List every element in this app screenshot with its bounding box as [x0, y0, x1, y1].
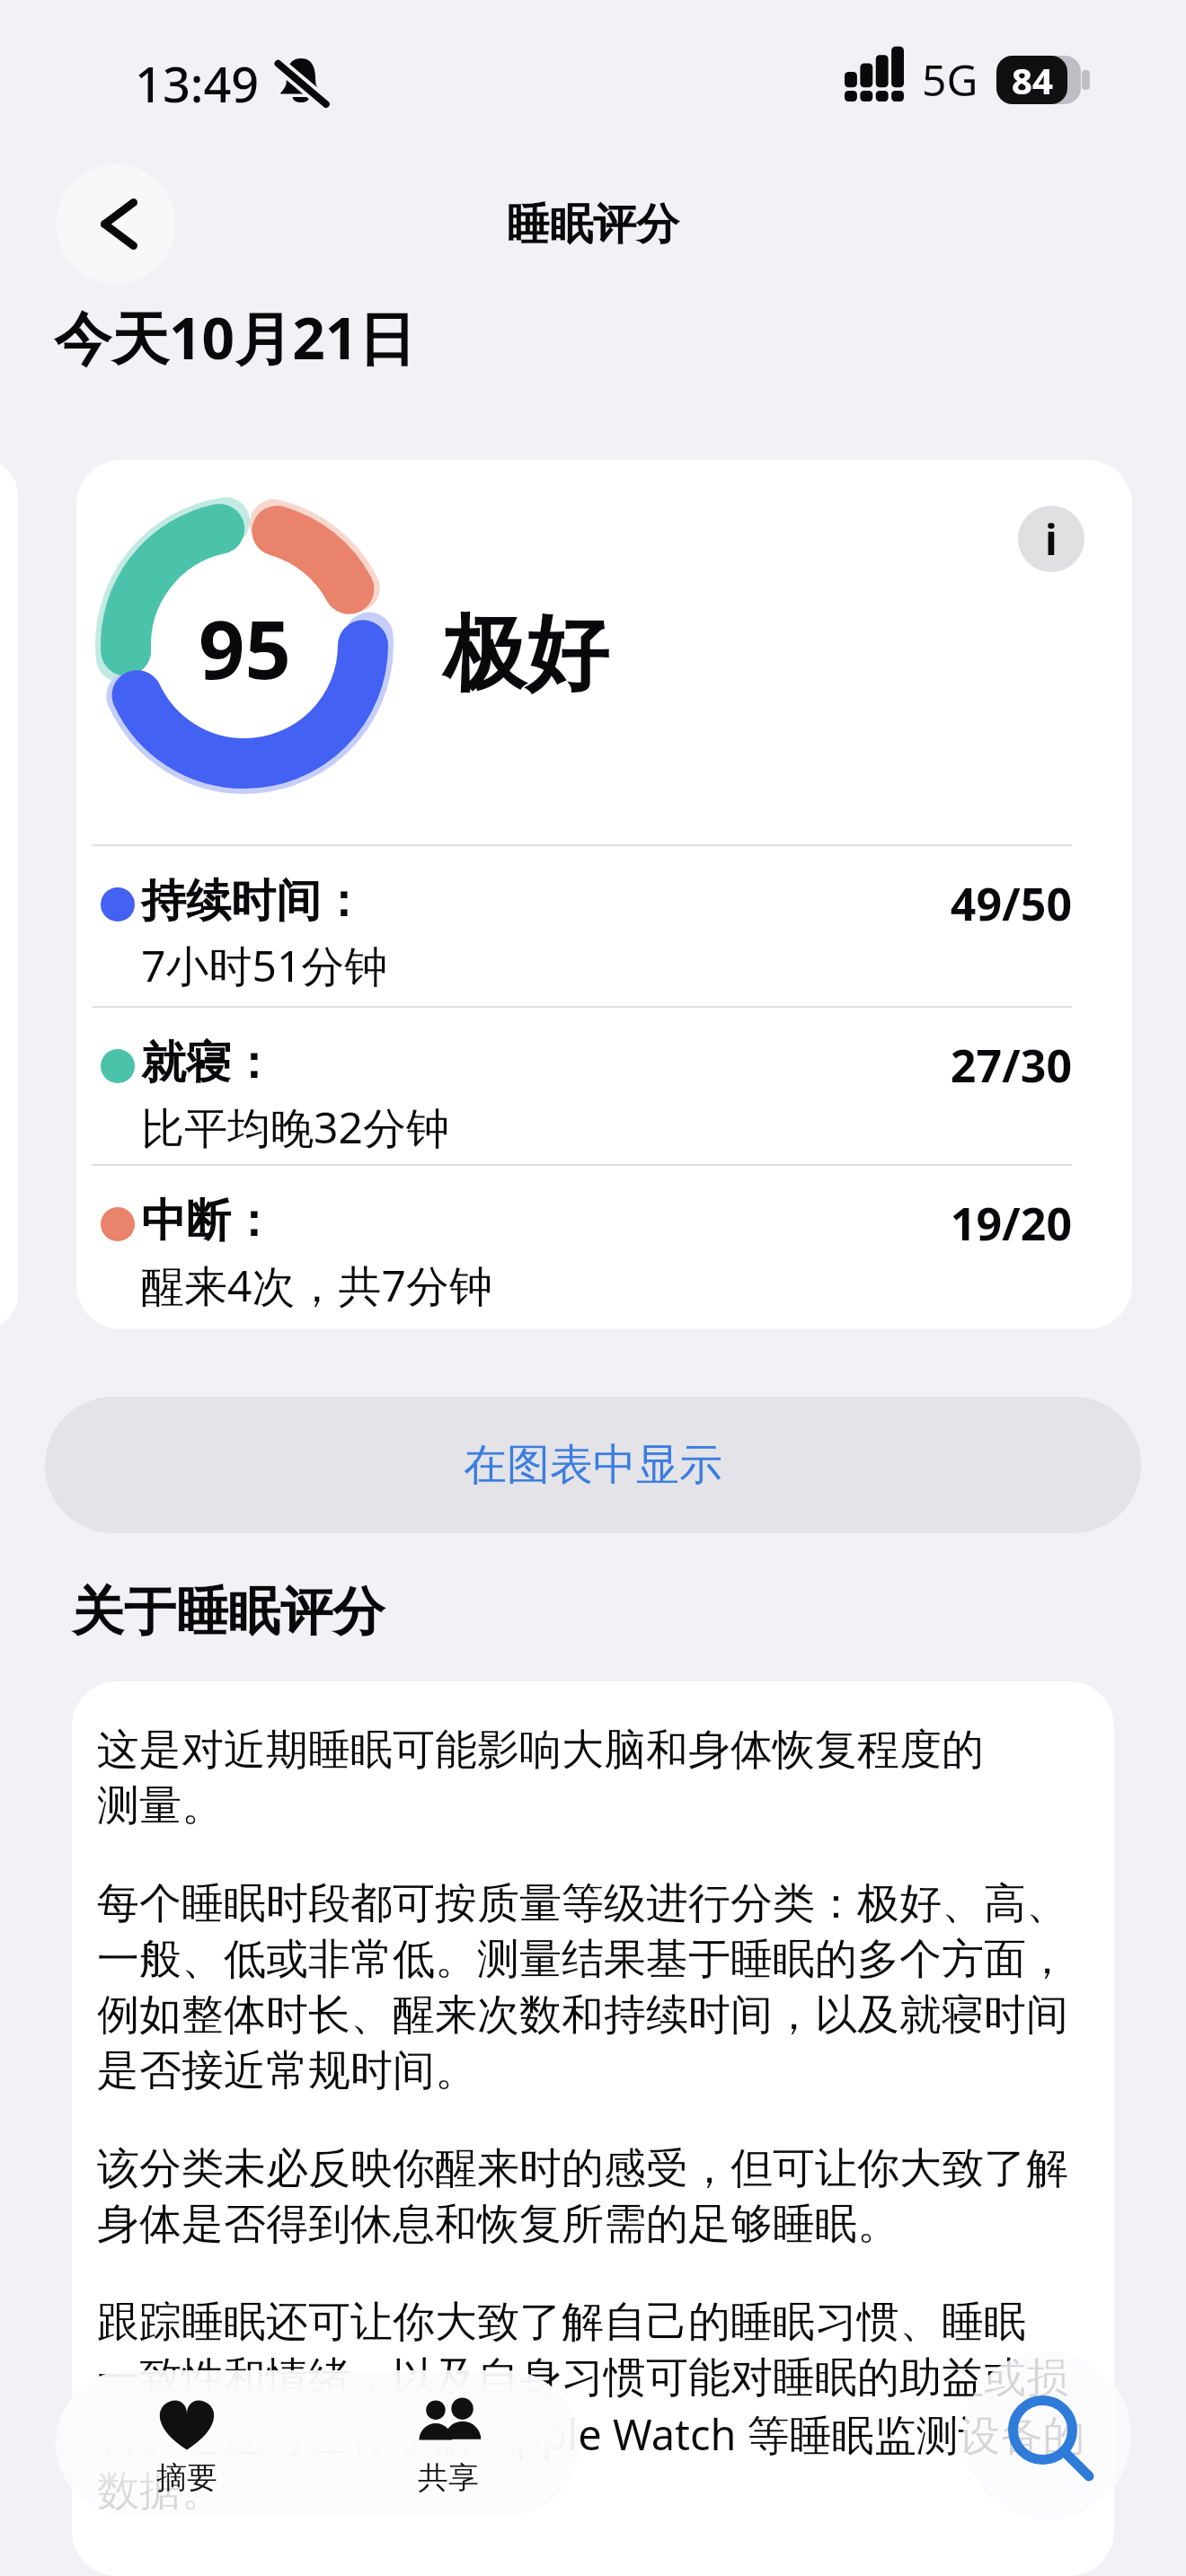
staticText: 19/20 [885, 1193, 1072, 1254]
staticText: i [1045, 511, 1058, 568]
button[interactable]: 摘要 [56, 2370, 317, 2516]
staticText: 跟踪睡眠还可让你大致了解自己的睡眠习惯、睡眠 一致性和情绪，以及自身习惯可能对睡… [97, 2296, 1085, 2518]
button[interactable]: Search [963, 2351, 1131, 2519]
staticText: 49/50 [885, 873, 1072, 934]
staticText: 27/30 [885, 1035, 1072, 1096]
staticText: 13:49 [135, 50, 260, 117]
staticText: 持续时间： [141, 873, 366, 930]
staticText: 5G [922, 50, 978, 109]
button[interactable]: 就寝： [76, 1006, 1132, 1164]
button[interactable]: Info [1018, 506, 1084, 572]
staticText: 就寝： [141, 1035, 276, 1091]
staticText: 在图表中显示 [464, 1438, 722, 1492]
button[interactable]: 共享 [317, 2370, 579, 2516]
staticText: 睡眠评分 [507, 198, 679, 251]
staticText: 醒来4次，共7分钟 [141, 1256, 492, 1315]
button[interactable]: 持续时间： [76, 844, 1132, 1002]
staticText: 摘要 [156, 2458, 217, 2497]
staticText: 极好 [443, 602, 608, 706]
staticText: 每个睡眠时段都可按质量等级进行分类：极好、高、 一般、低或非常低。测量结果基于睡… [97, 1877, 1068, 2097]
staticText: 共享 [418, 2458, 479, 2497]
staticText: 84 [1012, 56, 1053, 104]
button[interactable]: 中断： [76, 1164, 1132, 1322]
staticText: 今天10月21日 [54, 298, 416, 376]
button[interactable]: Back [56, 164, 175, 284]
button[interactable]: 在图表中显示 [45, 1397, 1141, 1533]
staticText: 7小时51分钟 [141, 936, 388, 995]
staticText: 关于睡眠评分 [72, 1579, 385, 1645]
staticText: 该分类未必反映你醒来时的感受，但可让你大致了解 身体是否得到休息和恢复所需的足够… [97, 2142, 1068, 2251]
button[interactable]: 跟踪睡眠还可让你大致了解自己的睡眠习惯、睡眠 一致性和情绪，以及自身习惯可能对睡… [56, 2370, 579, 2516]
staticText: 中断： [141, 1193, 276, 1249]
staticText: 这是对近期睡眠可能影响大脑和身体恢复程度的 测量。 [97, 1724, 984, 1832]
staticText: 95 [199, 593, 291, 703]
staticText: 比平均晚32分钟 [141, 1098, 449, 1157]
